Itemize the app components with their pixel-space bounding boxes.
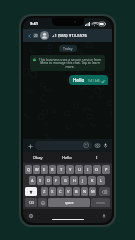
- button[interactable]: Y: [66, 165, 74, 174]
- staticText: V: [67, 189, 70, 194]
- button[interactable]: Camera: [94, 142, 101, 149]
- staticText: R: [51, 167, 54, 172]
- staticText: P: [105, 167, 108, 172]
- staticText: S: [39, 178, 42, 183]
- button[interactable]: Dictation: [101, 213, 107, 219]
- staticText: N: [83, 189, 87, 194]
- staticText: Okay: [33, 155, 43, 160]
- staticText: J: [82, 178, 84, 183]
- staticText: D: [47, 178, 50, 183]
- staticText: 20: [34, 34, 38, 38]
- button[interactable]: Emoji: [38, 198, 47, 207]
- staticText: Hello: [73, 77, 85, 83]
- button[interactable]: Hello: [52, 152, 82, 163]
- button[interactable]: N: [81, 187, 88, 196]
- staticText: I: [87, 167, 89, 172]
- button[interactable]: Okay: [23, 152, 52, 163]
- button[interactable]: Q: [25, 165, 32, 174]
- button[interactable]: space: [48, 198, 90, 207]
- staticText: O: [95, 167, 99, 172]
- staticText: X: [51, 189, 54, 194]
- button[interactable]: C: [57, 187, 64, 196]
- button[interactable]: T: [57, 165, 65, 174]
- staticText: +1 (555) 913-5576: [52, 33, 87, 39]
- button[interactable]: A: [29, 176, 36, 185]
- button[interactable]: U: [75, 165, 83, 174]
- button[interactable]: Numbers: [25, 198, 37, 207]
- staticText: 9:41: [30, 21, 38, 26]
- staticText: space: [65, 201, 74, 205]
- button[interactable]: Z: [41, 187, 48, 196]
- button[interactable]: Shift: [25, 187, 37, 196]
- staticText: G: [64, 178, 67, 183]
- button[interactable]: L: [97, 176, 105, 185]
- button[interactable]: W: [33, 165, 40, 174]
- staticText: Z: [43, 189, 46, 194]
- button[interactable]: X: [49, 187, 56, 196]
- staticText: B: [75, 189, 78, 194]
- button[interactable]: Back: [26, 32, 33, 39]
- staticText: U: [78, 167, 81, 172]
- button[interactable]: [35, 141, 92, 150]
- button[interactable]: M: [89, 187, 96, 196]
- staticText: M: [91, 189, 95, 194]
- button[interactable]: Attach: [26, 142, 34, 150]
- staticText: Y: [69, 167, 72, 172]
- staticText: A: [31, 178, 34, 183]
- button[interactable]: Backspace: [99, 187, 110, 196]
- button[interactable]: return: [91, 198, 110, 207]
- button[interactable]: K: [88, 176, 96, 185]
- staticText: This business uses a secure service from…: [38, 57, 102, 69]
- button[interactable]: F: [53, 176, 60, 185]
- staticText: L: [100, 178, 103, 183]
- staticText: 123: [29, 201, 34, 205]
- button[interactable]: B: [73, 187, 80, 196]
- staticText: K: [91, 178, 94, 183]
- button[interactable]: E: [41, 165, 48, 174]
- staticText: I: [96, 155, 98, 160]
- staticText: 9:41 AM: [88, 79, 100, 83]
- staticText: W: [35, 167, 39, 172]
- button[interactable]: R: [49, 165, 56, 174]
- button[interactable]: Globe: [28, 213, 34, 219]
- button[interactable]: D: [45, 176, 52, 185]
- button[interactable]: G: [61, 176, 69, 185]
- staticText: F: [55, 178, 58, 183]
- staticText: return: [96, 201, 105, 205]
- staticText: T: [60, 167, 63, 172]
- button[interactable]: O: [93, 165, 101, 174]
- staticText: Hello: [62, 155, 72, 160]
- button[interactable]: I: [82, 152, 112, 163]
- button[interactable]: P: [102, 165, 110, 174]
- staticText: C: [59, 189, 62, 194]
- staticText: H: [73, 178, 76, 183]
- staticText: E: [43, 167, 46, 172]
- button[interactable]: J: [79, 176, 87, 185]
- staticText: Today: [63, 46, 73, 51]
- button[interactable]: Voice message: [102, 142, 109, 149]
- button[interactable]: H: [70, 176, 78, 185]
- staticText: Q: [27, 167, 31, 172]
- button[interactable]: I: [84, 165, 92, 174]
- button[interactable]: S: [37, 176, 44, 185]
- button[interactable]: V: [65, 187, 72, 196]
